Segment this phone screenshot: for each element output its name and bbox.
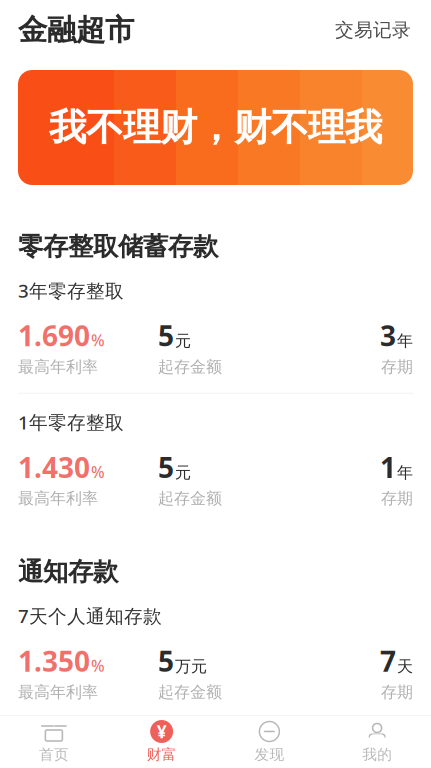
staticText: 年 — [397, 463, 413, 482]
staticText: 首页 — [39, 745, 69, 763]
staticText: 1.690 — [18, 317, 90, 354]
staticText: 存期 — [381, 489, 413, 508]
staticText: % — [91, 655, 105, 676]
staticText: 5 — [158, 448, 174, 486]
button[interactable]: ¥ — [108, 714, 216, 768]
staticText: 我不理财，财不理我 — [49, 105, 382, 150]
staticText: 发现 — [254, 745, 284, 763]
staticText: 年 — [397, 331, 413, 351]
staticText: 起存金额 — [158, 357, 222, 377]
staticText: 1.430 — [18, 448, 90, 486]
staticText: 元 — [175, 331, 191, 351]
staticText: 我的 — [362, 745, 392, 763]
staticText: 1年零存整取 — [18, 410, 124, 434]
staticText: 最高年利率 — [18, 682, 98, 702]
button[interactable]: 7天个人通知存款 — [0, 587, 431, 719]
staticText: 金融超市 — [18, 12, 134, 48]
staticText: 通知存款 — [18, 556, 118, 587]
staticText: 财富 — [147, 745, 177, 763]
staticText: 7 — [380, 642, 396, 679]
staticText: 3 — [380, 317, 396, 354]
button[interactable]: 我的 — [323, 714, 431, 768]
staticText: 1 — [380, 448, 396, 486]
staticText: 5 — [158, 317, 174, 354]
staticText: ¥ — [157, 720, 167, 743]
staticText: 万元 — [175, 657, 207, 676]
button[interactable]: 1天个人通知存款 — [0, 719, 431, 768]
staticText: 7天个人通知存款 — [18, 603, 162, 628]
button[interactable]: 3年零存整取 — [0, 262, 431, 394]
staticText: 5 — [158, 642, 174, 679]
staticText: 零存整取储蓄存款 — [18, 231, 218, 262]
staticText: 最高年利率 — [18, 489, 98, 508]
button[interactable]: 我不理财，财不理我 — [18, 70, 413, 185]
staticText: 天 — [397, 657, 413, 676]
staticText: % — [91, 329, 105, 351]
staticText: 起存金额 — [158, 682, 222, 702]
staticText: 交易记录 — [335, 18, 411, 41]
staticText: 元 — [175, 463, 191, 482]
staticText: 1.350 — [18, 642, 90, 679]
staticText: 起存金额 — [158, 489, 222, 508]
staticText: 最高年利率 — [18, 357, 98, 377]
button[interactable]: 发现 — [215, 714, 323, 768]
button[interactable]: 首页 — [0, 714, 108, 768]
staticText: 存期 — [381, 357, 413, 377]
button[interactable]: 交易记录 — [333, 12, 413, 47]
staticText: 3年零存整取 — [18, 278, 124, 303]
staticText: % — [91, 461, 105, 482]
button[interactable]: 1年零存整取 — [0, 394, 431, 524]
staticText: 存期 — [381, 682, 413, 702]
staticText: 1天个人通知存款 — [18, 735, 162, 760]
